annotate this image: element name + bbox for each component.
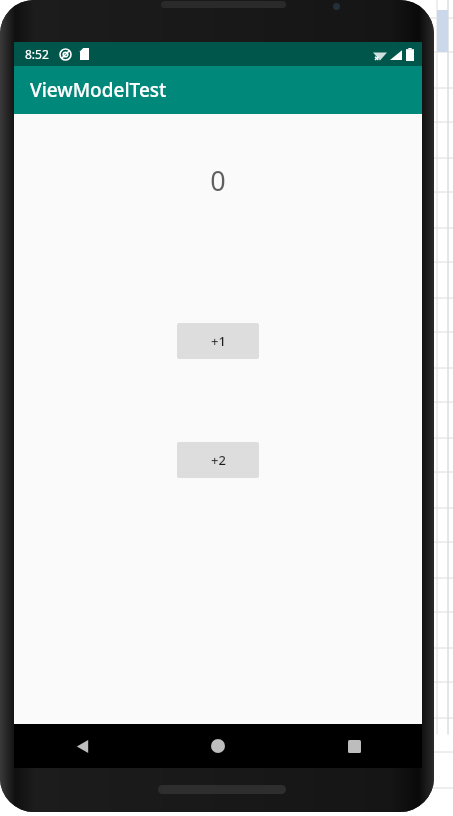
staticText: +1 [211, 332, 226, 350]
button[interactable]: +2 [177, 442, 259, 478]
staticText: +2 [211, 451, 226, 469]
staticText: 0 [210, 162, 226, 199]
button[interactable]: Recent apps [286, 724, 422, 768]
button[interactable]: +1 [177, 323, 259, 359]
staticText: 8:52 [25, 46, 49, 62]
button[interactable]: Home [150, 724, 286, 768]
button[interactable]: Back [14, 724, 150, 768]
staticText: ViewModelTest [30, 77, 167, 103]
